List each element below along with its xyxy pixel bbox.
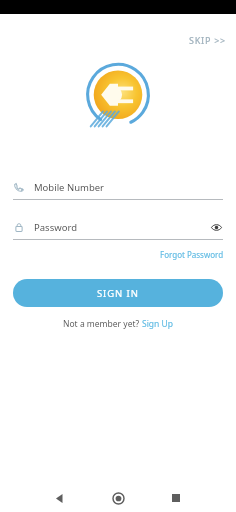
- staticText: Not a member yet?: [63, 318, 142, 330]
- button[interactable]: Sign Up: [142, 318, 173, 330]
- button[interactable]: Forgot Password: [148, 247, 236, 262]
- button[interactable]: Password: [13, 217, 223, 237]
- button[interactable]: Recent apps: [159, 484, 193, 512]
- button[interactable]: SKIP >>: [179, 30, 236, 50]
- button[interactable]: SIGN IN: [13, 279, 223, 307]
- button[interactable]: Show password: [209, 220, 223, 234]
- button[interactable]: Back: [43, 484, 77, 512]
- staticText: Forgot Password: [160, 249, 224, 260]
- staticText: SIGN IN: [97, 287, 139, 300]
- button[interactable]: Mobile Number: [13, 177, 223, 197]
- staticText: Mobile Number: [34, 181, 105, 194]
- button[interactable]: Home: [101, 484, 135, 512]
- staticText: SKIP >>: [189, 34, 226, 46]
- staticText: Sign Up: [142, 318, 173, 330]
- staticText: Password: [34, 221, 77, 234]
